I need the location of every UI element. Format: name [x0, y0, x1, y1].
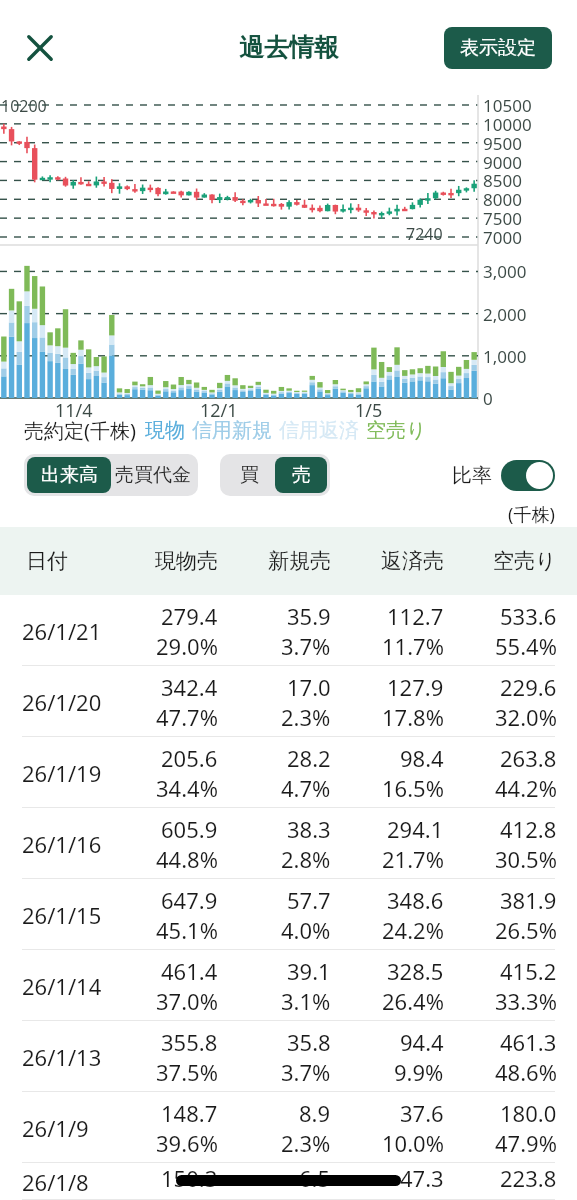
staticText: 21.7%: [382, 844, 444, 874]
staticText: 2.3%: [281, 702, 331, 732]
staticText: 1,000: [483, 345, 527, 368]
staticText: 返済売: [381, 548, 444, 574]
staticText: 35.9: [287, 601, 331, 631]
staticText: 348.6: [387, 885, 444, 915]
staticText: 37.5%: [156, 1057, 218, 1087]
staticText: 98.4: [400, 743, 444, 773]
staticText: 表示設定: [460, 36, 536, 60]
staticText: 11/4: [55, 398, 93, 423]
staticText: 279.4: [161, 601, 218, 631]
staticText: 9000: [483, 151, 522, 174]
staticText: 4.7%: [281, 773, 331, 803]
staticText: 売買代金: [115, 463, 191, 487]
staticText: 223.8: [500, 1163, 557, 1193]
staticText: 3.7%: [281, 631, 331, 661]
staticText: 605.9: [161, 814, 218, 844]
staticText: 415.2: [500, 956, 557, 986]
button[interactable]: 表示設定: [444, 27, 552, 69]
staticText: 4.0%: [281, 915, 331, 945]
button[interactable]: 26/1/19: [0, 737, 577, 808]
staticText: 29.0%: [156, 631, 218, 661]
button[interactable]: 26/1/14: [0, 950, 577, 1021]
button[interactable]: 出来高: [27, 457, 111, 493]
button[interactable]: 売: [275, 457, 327, 493]
staticText: 37.0%: [156, 986, 218, 1016]
button[interactable]: 26/1/8: [0, 1163, 577, 1200]
staticText: 8.9: [299, 1098, 331, 1128]
staticText: 16.5%: [382, 773, 444, 803]
button[interactable]: 26/1/16: [0, 808, 577, 879]
staticText: 新規売: [268, 548, 331, 574]
staticText: 過去情報: [239, 32, 339, 63]
button[interactable]: 26/1/9: [0, 1092, 577, 1163]
staticText: 328.5: [387, 956, 444, 986]
staticText: 55.4%: [495, 631, 557, 661]
staticText: 2.8%: [281, 844, 331, 874]
staticText: 412.8: [500, 814, 557, 844]
staticText: 3,000: [483, 260, 527, 283]
staticText: 11.7%: [382, 631, 444, 661]
staticText: 日付: [26, 548, 68, 574]
staticText: 26/1/20: [22, 687, 102, 717]
staticText: 17.8%: [382, 702, 444, 732]
staticText: 7000: [483, 226, 522, 249]
button[interactable]: Close: [12, 20, 68, 76]
staticText: 150.3: [161, 1163, 218, 1193]
staticText: 比率: [452, 463, 492, 488]
staticText: 26/1/16: [22, 829, 102, 859]
staticText: 32.0%: [495, 702, 557, 732]
staticText: 8500: [483, 169, 522, 192]
staticText: 26/1/21: [22, 616, 102, 646]
staticText: 2,000: [483, 303, 527, 326]
staticText: 26/1/8: [22, 1167, 89, 1197]
button[interactable]: 26/1/13: [0, 1021, 577, 1092]
staticText: 8000: [483, 188, 522, 211]
staticText: 342.4: [161, 672, 218, 702]
staticText: 44.8%: [156, 844, 218, 874]
button[interactable]: 買: [223, 457, 275, 493]
staticText: 10.0%: [382, 1128, 444, 1158]
staticText: 39.6%: [156, 1128, 218, 1158]
staticText: 355.8: [161, 1027, 218, 1057]
staticText: 94.4: [400, 1027, 444, 1057]
button[interactable]: 26/1/20: [0, 666, 577, 737]
staticText: 7240: [406, 223, 443, 245]
button[interactable]: 比率: [501, 460, 555, 491]
staticText: 35.8: [287, 1027, 331, 1057]
staticText: 10500: [483, 94, 532, 117]
staticText: 信用返済: [279, 418, 359, 443]
staticText: 現物: [145, 418, 185, 443]
staticText: 2.3%: [281, 1128, 331, 1158]
staticText: 33.3%: [495, 986, 557, 1016]
staticText: 17.0: [287, 672, 331, 702]
button[interactable]: 売買代金: [111, 457, 195, 493]
staticText: 294.1: [387, 814, 444, 844]
button[interactable]: 26/1/21: [0, 595, 577, 666]
staticText: 3.1%: [281, 986, 331, 1016]
staticText: 26/1/14: [22, 971, 102, 1001]
staticText: 26/1/19: [22, 758, 102, 788]
staticText: 空売り: [493, 548, 557, 574]
staticText: 売約定(千株): [24, 417, 136, 444]
staticText: 533.6: [500, 601, 557, 631]
staticText: 30.5%: [495, 844, 557, 874]
staticText: 381.9: [500, 885, 557, 915]
staticText: 26/1/13: [22, 1042, 102, 1072]
staticText: 6.5: [299, 1163, 331, 1193]
staticText: 39.1: [287, 956, 331, 986]
staticText: 57.7: [287, 885, 331, 915]
staticText: 売: [292, 463, 311, 487]
staticText: 461.4: [161, 956, 218, 986]
staticText: 37.6: [400, 1098, 444, 1128]
staticText: 28.2: [287, 743, 331, 773]
button[interactable]: 26/1/15: [0, 879, 577, 950]
staticText: 現物売: [155, 548, 218, 574]
staticText: 1/5: [355, 398, 383, 423]
staticText: 47.7%: [156, 702, 218, 732]
staticText: 10200: [1, 95, 47, 117]
staticText: 263.8: [500, 743, 557, 773]
staticText: 24.2%: [382, 915, 444, 945]
staticText: 空売り: [366, 418, 427, 443]
staticText: 44.2%: [495, 773, 557, 803]
staticText: 148.7: [161, 1098, 218, 1128]
